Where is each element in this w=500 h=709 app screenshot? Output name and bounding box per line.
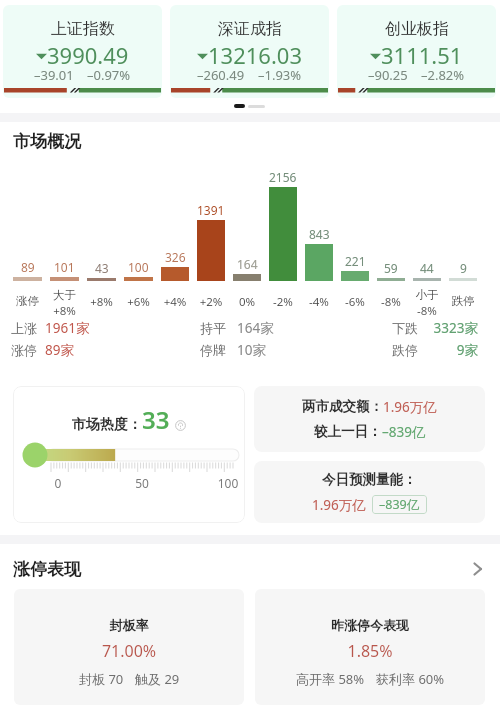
staticText: 1391 xyxy=(197,202,225,218)
staticText: –839亿 xyxy=(379,496,420,513)
staticText: 上涨 xyxy=(11,320,37,336)
staticText: –260.49 xyxy=(197,66,245,84)
staticText: 100 xyxy=(128,259,149,275)
staticText: 涨停 xyxy=(13,294,42,308)
staticText: 1.85% xyxy=(255,640,485,662)
staticText: -8% xyxy=(413,303,441,319)
staticText: 221 xyxy=(345,253,366,269)
button[interactable]: 深证成指 xyxy=(170,5,329,98)
staticText: 触及 29 xyxy=(135,670,180,688)
staticText: 跌停 xyxy=(392,342,418,358)
staticText: 停牌 xyxy=(200,342,226,358)
staticText: -4% xyxy=(305,294,333,310)
button[interactable]: 两市成交额： xyxy=(254,386,485,452)
other: 查看更多 xyxy=(469,561,485,577)
staticText: 100 xyxy=(216,475,240,491)
staticText: 1961家 xyxy=(45,319,90,337)
staticText: 3990.49 xyxy=(47,40,129,70)
staticText: 较上一日： xyxy=(314,423,382,440)
staticText: +8% xyxy=(87,294,116,310)
staticText: 3323家 xyxy=(408,319,478,337)
staticText: 164家 xyxy=(237,319,274,337)
staticText: 0% xyxy=(233,294,261,310)
button[interactable]: 上证指数 xyxy=(3,5,162,98)
staticText: -2% xyxy=(269,294,297,310)
button[interactable]: 市场热度： xyxy=(13,386,245,523)
staticText: 创业板指 xyxy=(385,19,449,39)
staticText: 164 xyxy=(237,256,258,272)
staticText: +8% xyxy=(50,303,79,319)
staticText: +2% xyxy=(197,294,225,310)
staticText: 上证指数 xyxy=(51,19,115,39)
staticText: –39.01 xyxy=(34,66,74,84)
staticText: 43 xyxy=(95,260,109,276)
staticText: +6% xyxy=(124,294,153,310)
staticText: 843 xyxy=(309,226,330,242)
staticText: +4% xyxy=(161,294,189,310)
staticText: 1.96万亿 xyxy=(383,398,437,416)
staticText: 326 xyxy=(165,249,186,265)
staticText: 下跌 xyxy=(392,320,418,336)
staticText: 59 xyxy=(384,260,398,276)
staticText: 今日预测量能： xyxy=(322,471,417,488)
staticText: 9家 xyxy=(408,341,478,359)
staticText: 10家 xyxy=(237,341,266,359)
staticText: 封板 70 xyxy=(79,670,124,688)
staticText: 44 xyxy=(420,260,434,276)
staticText: 涨停表现 xyxy=(13,559,81,580)
staticText: 89家 xyxy=(45,341,74,359)
staticText: 9 xyxy=(460,260,467,276)
staticText: –839亿 xyxy=(382,423,426,441)
staticText: –1.93% xyxy=(258,66,302,84)
staticText: 市场热度： xyxy=(72,416,142,434)
staticText: 获利率 60% xyxy=(376,670,445,688)
staticText: 昨涨停今表现 xyxy=(255,617,485,633)
staticText: –0.97% xyxy=(87,66,131,84)
staticText: –90.25 xyxy=(368,66,408,84)
button[interactable]: 封板率 xyxy=(14,589,244,705)
staticText: –2.82% xyxy=(421,66,465,84)
staticText: 封板率 xyxy=(14,617,244,633)
staticText: -6% xyxy=(341,294,369,310)
staticText: 涨停 xyxy=(11,342,37,358)
staticText: 两市成交额： xyxy=(302,398,383,415)
staticText: 13216.03 xyxy=(208,40,302,70)
staticText: 0 xyxy=(49,475,67,491)
staticText: 33 xyxy=(142,403,170,436)
staticText: 高开率 58% xyxy=(296,670,365,688)
staticText: 1.96万亿 xyxy=(312,496,366,514)
staticText: -8% xyxy=(377,294,405,310)
staticText: 50 xyxy=(133,475,151,491)
staticText: 101 xyxy=(54,259,75,275)
staticText: 89 xyxy=(21,259,35,275)
button[interactable]: 创业板指 xyxy=(337,5,496,98)
staticText: 71.00% xyxy=(14,640,244,662)
staticText: 2156 xyxy=(269,169,297,185)
staticText: 持平 xyxy=(200,320,226,336)
staticText: 跌停 xyxy=(449,294,477,308)
button[interactable]: 涨停表现 xyxy=(13,555,485,583)
staticText: 市场概况 xyxy=(13,131,81,152)
staticText: 深证成指 xyxy=(218,19,282,39)
button[interactable]: 昨涨停今表现 xyxy=(255,589,485,705)
button[interactable]: 今日预测量能： xyxy=(254,461,485,523)
staticText: 小于 xyxy=(413,288,441,302)
staticText: 大于 xyxy=(50,288,79,302)
staticText: 3111.51 xyxy=(381,40,463,70)
